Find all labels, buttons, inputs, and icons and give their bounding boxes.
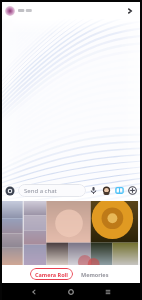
button[interactable]: Voice note bbox=[87, 184, 100, 197]
button[interactable]: Camera bbox=[3, 184, 17, 198]
staticText: Camera Roll bbox=[35, 271, 68, 278]
button[interactable]: Photo bbox=[105, 201, 140, 265]
button[interactable]: Camera Roll bbox=[30, 268, 73, 280]
button[interactable]: Home bbox=[62, 283, 80, 300]
button[interactable]: Recent apps bbox=[99, 283, 117, 300]
button[interactable]: Add bbox=[126, 184, 139, 197]
staticText: Send a chat bbox=[24, 187, 57, 195]
staticText: Memories bbox=[81, 271, 109, 278]
button[interactable]: Send a chat bbox=[18, 184, 86, 197]
button[interactable]: Memories bbox=[77, 268, 113, 280]
button[interactable]: Back bbox=[25, 283, 43, 300]
button[interactable]: Stickers bbox=[113, 184, 126, 197]
button[interactable]: Send to friend bbox=[100, 184, 113, 197]
button[interactable]: Photo bbox=[2, 201, 36, 265]
button[interactable]: Photo bbox=[70, 201, 105, 265]
button[interactable]: Open chat bbox=[124, 5, 136, 17]
button[interactable]: Profile bbox=[5, 6, 15, 16]
button[interactable]: Photo bbox=[36, 201, 70, 265]
